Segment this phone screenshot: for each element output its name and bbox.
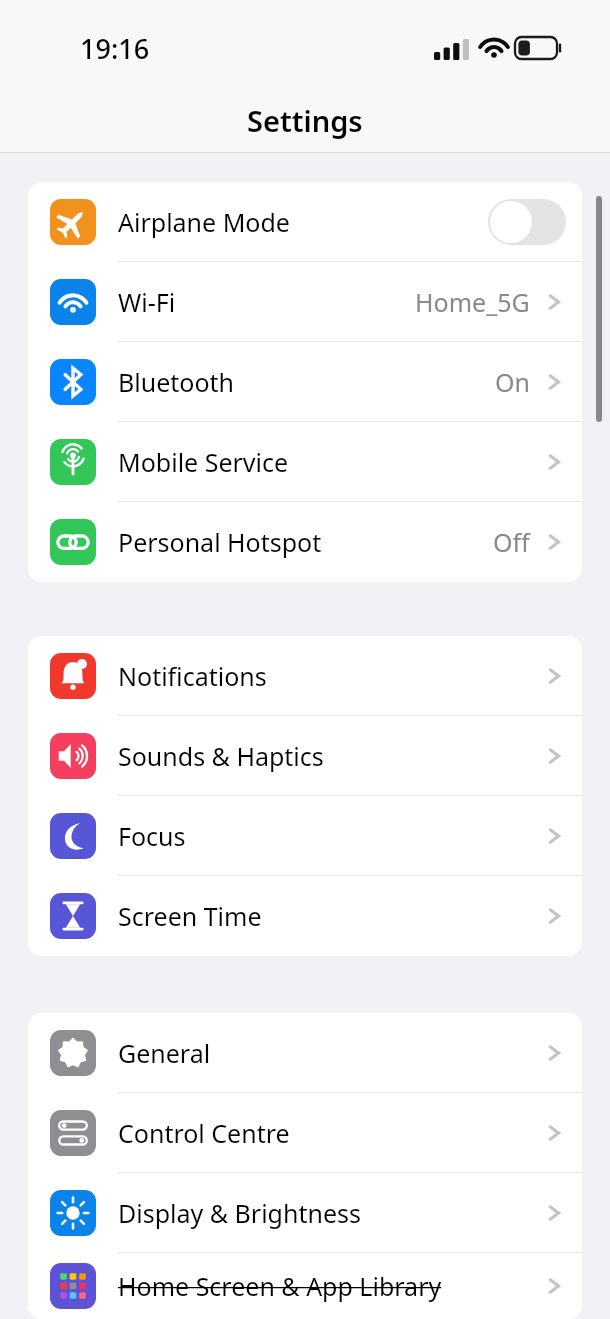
button[interactable]: Airplane Mode	[28, 182, 582, 262]
button[interactable]: Airplane Mode, off	[488, 199, 566, 245]
button[interactable]: Home Screen & App Library	[28, 1253, 582, 1319]
staticText: Display & Brightness	[118, 1196, 361, 1230]
staticText: On	[495, 365, 530, 399]
staticText: Notifications	[118, 659, 267, 693]
staticText: Home_5G	[415, 285, 530, 319]
staticText: 19:16	[80, 30, 150, 67]
staticText: Home Screen & App Library	[118, 1269, 442, 1303]
staticText: Sounds & Haptics	[118, 739, 324, 773]
staticText: Bluetooth	[118, 365, 235, 399]
button[interactable]: Notifications	[28, 636, 582, 716]
staticText: Off	[493, 525, 530, 559]
staticText: Screen Time	[118, 899, 262, 933]
button[interactable]: Sounds & Haptics	[28, 716, 582, 796]
staticText: Focus	[118, 819, 186, 853]
button[interactable]: Display & Brightness	[28, 1173, 582, 1253]
button[interactable]: Personal Hotspot	[28, 502, 582, 582]
button[interactable]: Screen Time	[28, 876, 582, 956]
button[interactable]: Wi-Fi	[28, 262, 582, 342]
button[interactable]: Focus	[28, 796, 582, 876]
staticText: Mobile Service	[118, 445, 289, 479]
staticText: Airplane Mode	[118, 205, 290, 239]
staticText: General	[118, 1036, 211, 1070]
button[interactable]: Control Centre	[28, 1093, 582, 1173]
button[interactable]: Mobile Service	[28, 422, 582, 502]
button[interactable]: Bluetooth	[28, 342, 582, 422]
button[interactable]: General	[28, 1013, 582, 1093]
staticText: Personal Hotspot	[118, 525, 322, 559]
staticText: Settings	[247, 101, 363, 140]
staticText: Control Centre	[118, 1116, 290, 1150]
staticText: Wi-Fi	[118, 285, 176, 319]
